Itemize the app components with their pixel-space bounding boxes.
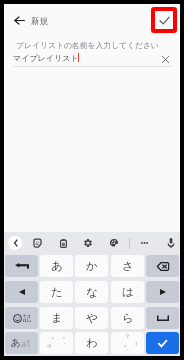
staticText: や [86, 311, 98, 325]
button[interactable]: Undo [5, 255, 38, 277]
staticText: マイプレイリスト [13, 53, 79, 63]
staticText: ！ [133, 340, 139, 348]
staticText: た [51, 285, 63, 299]
button[interactable]: Punctuation [111, 332, 144, 354]
staticText: ゛ [54, 343, 59, 349]
button[interactable]: ら [111, 307, 144, 329]
staticText: プレイリストの名前を入力してください [16, 40, 159, 50]
staticText: あ [51, 259, 63, 273]
button[interactable]: ま [40, 307, 73, 329]
button[interactable]: Enter [146, 332, 179, 354]
button[interactable]: Backspace [146, 255, 179, 277]
button[interactable]: Settings [80, 235, 96, 251]
staticText: わ [86, 336, 98, 350]
button[interactable]: Cursor right [146, 281, 179, 303]
staticText: ゜ [58, 336, 66, 345]
staticText: ら [122, 311, 134, 325]
button[interactable]: Back [10, 11, 28, 29]
staticText: ？ [125, 333, 130, 339]
staticText: ゛ [47, 336, 55, 345]
button[interactable]: Collapse toolbar [8, 236, 22, 250]
staticText: 記 [23, 313, 31, 323]
button[interactable]: た [40, 281, 73, 303]
staticText: … [126, 347, 130, 352]
button[interactable]: な [75, 281, 108, 303]
staticText: さ [122, 259, 134, 273]
button[interactable]: は [111, 281, 144, 303]
button[interactable]: や [75, 307, 108, 329]
button[interactable]: Stickers [29, 235, 45, 251]
button[interactable]: Small letters and marks [40, 332, 73, 354]
staticText: は [122, 285, 134, 299]
button[interactable]: Done [151, 7, 177, 33]
staticText: 。 [124, 340, 131, 348]
staticText: あ [11, 337, 21, 349]
staticText: か [86, 259, 98, 273]
button[interactable]: Space [146, 307, 179, 329]
button[interactable]: あ [40, 255, 73, 277]
button[interactable]: Clear text [158, 52, 172, 66]
staticText: 小 [47, 343, 52, 349]
button[interactable]: か [75, 255, 108, 277]
staticText: a1 [21, 337, 32, 349]
button[interactable]: Themes [106, 235, 122, 251]
staticText: ゜ [61, 343, 66, 349]
button[interactable]: Voice input [163, 235, 179, 251]
button[interactable]: さ [111, 255, 144, 277]
button[interactable]: Emoji and symbols [5, 307, 38, 329]
staticText: な [86, 285, 98, 299]
staticText: 、 [116, 340, 122, 348]
button[interactable]: あ [5, 332, 38, 354]
button[interactable]: Cursor left [5, 281, 38, 303]
staticText: 新規 [31, 16, 48, 27]
button[interactable]: Clipboard [55, 235, 71, 251]
staticText: ま [51, 311, 63, 325]
button[interactable]: わ [75, 332, 108, 354]
button[interactable]: More options [136, 235, 152, 251]
